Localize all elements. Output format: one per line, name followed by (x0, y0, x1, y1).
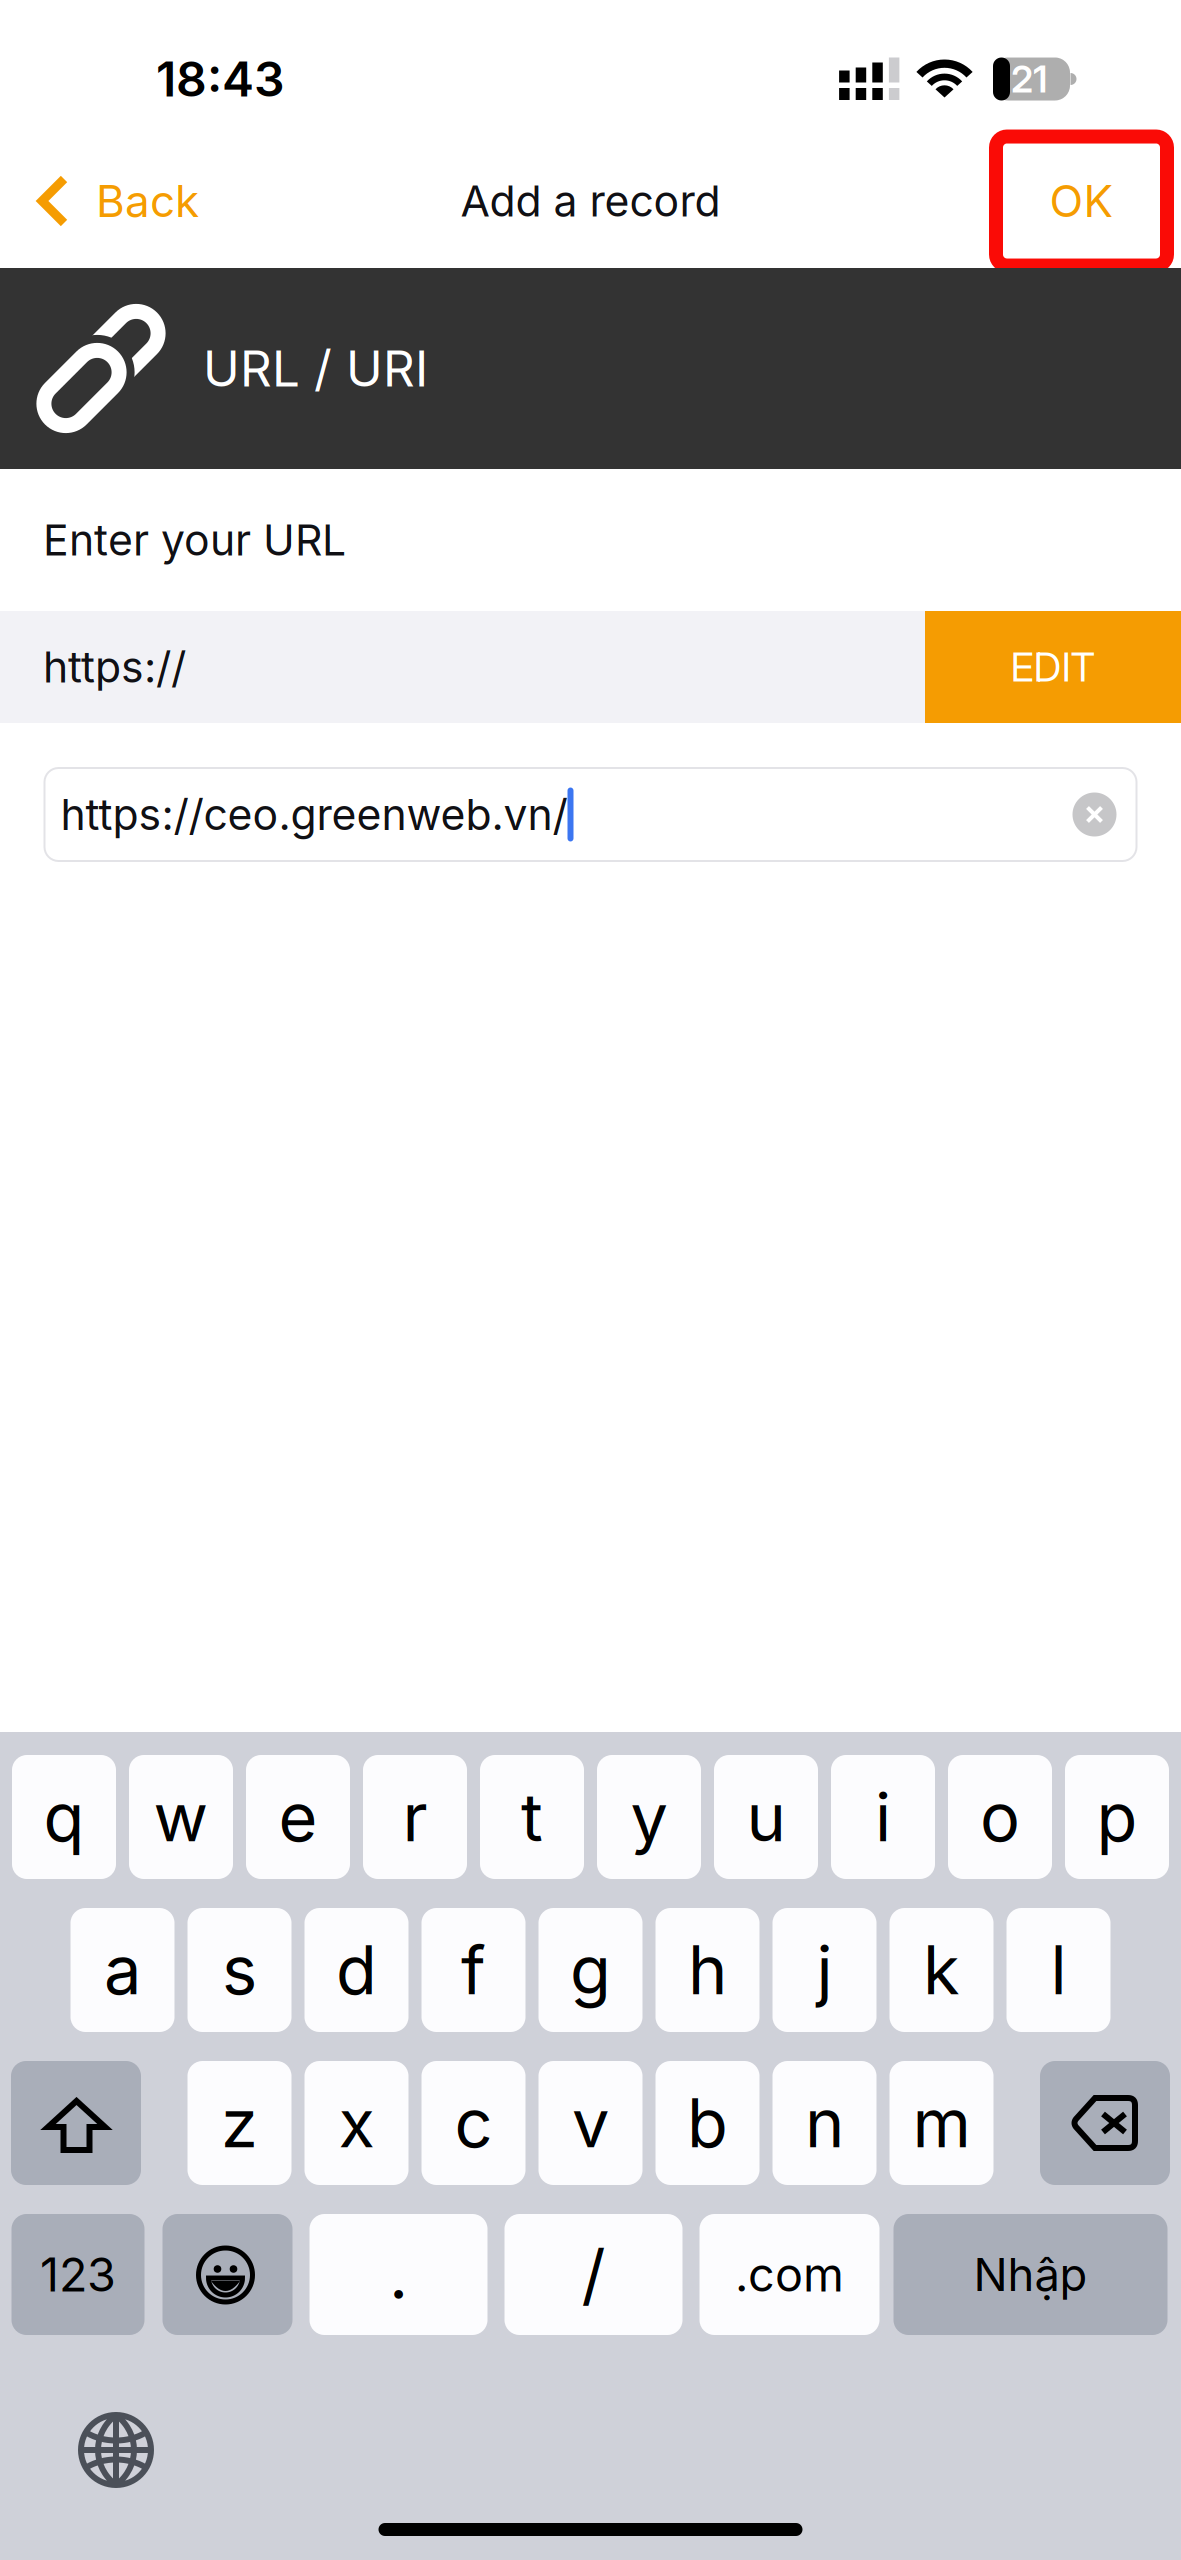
button[interactable]: / (504, 2214, 682, 2335)
button[interactable]: EDIT (925, 611, 1181, 723)
staticText: s (222, 1930, 257, 2010)
staticText: Back (96, 174, 199, 228)
staticText: 21 (1011, 56, 1048, 102)
button[interactable]: v (538, 2061, 642, 2185)
button[interactable]: t (480, 1755, 584, 1879)
button[interactable]: l (1006, 1908, 1110, 2032)
staticText: OK (1049, 174, 1113, 228)
staticText: / (581, 2234, 605, 2315)
staticText: n (805, 2083, 844, 2163)
staticText: Enter your URL (43, 514, 346, 566)
button[interactable]: j (772, 1908, 876, 2032)
button[interactable]: 123 (11, 2214, 144, 2335)
button[interactable]: n (772, 2061, 876, 2185)
staticText: i (875, 1777, 891, 1857)
staticText: w (153, 1777, 208, 1857)
staticText: q (43, 1777, 84, 1857)
staticText: Nhập (973, 2247, 1087, 2302)
staticText: p (1096, 1777, 1137, 1857)
staticText: . (389, 2234, 408, 2315)
staticText: u (746, 1777, 785, 1857)
staticText: EDIT (1010, 643, 1095, 691)
button[interactable]: b (655, 2061, 759, 2185)
staticText: j (816, 1930, 832, 2010)
staticText: URL / URI (203, 339, 428, 398)
button[interactable]: d (304, 1908, 408, 2032)
staticText: b (687, 2083, 728, 2163)
staticText: f (461, 1930, 486, 2010)
staticText: c (454, 2083, 492, 2163)
staticText: r (402, 1777, 427, 1857)
staticText: o (980, 1777, 1020, 1857)
button[interactable]: c (421, 2061, 525, 2185)
button[interactable]: o (948, 1755, 1052, 1879)
button[interactable]: g (538, 1908, 642, 2032)
button[interactable]: w (129, 1755, 233, 1879)
button[interactable]: a (70, 1908, 174, 2032)
button[interactable]: Delete (1040, 2061, 1170, 2185)
staticText: l (1050, 1930, 1066, 2010)
staticText: t (521, 1777, 543, 1857)
button[interactable]: r (363, 1755, 467, 1879)
button[interactable]: Nhập (893, 2214, 1167, 2335)
button[interactable]: s (187, 1908, 291, 2032)
staticText: 123 (40, 2246, 116, 2303)
button[interactable]: f (421, 1908, 525, 2032)
button[interactable]: y (597, 1755, 701, 1879)
button[interactable]: .com (699, 2214, 879, 2335)
button[interactable]: k (889, 1908, 993, 2032)
staticText: d (336, 1930, 377, 2010)
staticText: x (338, 2083, 374, 2163)
staticText: k (923, 1930, 960, 2010)
staticText: v (572, 2083, 609, 2163)
button[interactable]: h (655, 1908, 759, 2032)
staticText: https:// (43, 641, 186, 693)
staticText: Add a record (460, 175, 720, 227)
staticText: https://ceo.greenweb.vn/ (60, 789, 567, 840)
button[interactable]: z (187, 2061, 291, 2185)
staticText: e (278, 1777, 317, 1857)
staticText: .com (735, 2246, 844, 2303)
staticText: 18:43 (156, 50, 285, 108)
button[interactable]: Back (0, 134, 221, 268)
staticText: y (630, 1777, 667, 1857)
button[interactable]: m (889, 2061, 993, 2185)
button[interactable]: i (831, 1755, 935, 1879)
staticText: m (912, 2083, 970, 2163)
button[interactable]: p (1065, 1755, 1169, 1879)
button[interactable]: e (246, 1755, 350, 1879)
button[interactable]: Shift (11, 2061, 141, 2185)
button[interactable]: u (714, 1755, 818, 1879)
button[interactable]: . (309, 2214, 487, 2335)
staticText: z (221, 2083, 258, 2163)
button[interactable]: Next keyboard (78, 2412, 154, 2488)
button[interactable]: x (304, 2061, 408, 2185)
button[interactable]: Emoji (162, 2214, 292, 2335)
button[interactable]: q (12, 1755, 116, 1879)
staticText: h (688, 1930, 727, 2010)
staticText: g (570, 1930, 611, 2010)
button[interactable]: OK (996, 136, 1167, 265)
button[interactable]: Clear text (1072, 792, 1116, 836)
staticText: a (104, 1930, 141, 2010)
